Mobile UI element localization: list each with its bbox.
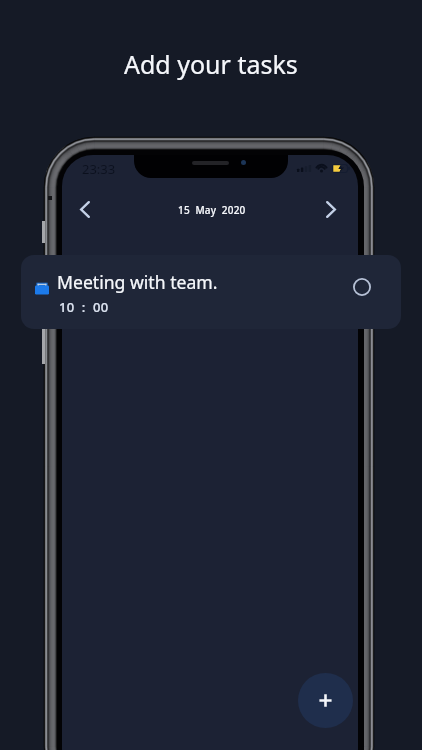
staticText: 23:33 [82,160,116,178]
staticText: Add your tasks [124,47,298,81]
button[interactable]: Next day [314,192,348,226]
button[interactable]: Mark complete [345,270,379,304]
staticText: 15 May 2020 [178,203,246,217]
button[interactable]: Add task [298,673,353,728]
button[interactable]: Previous day [68,192,102,226]
staticText: Meeting with team. [57,270,218,294]
staticText: 10 : 00 [59,298,109,316]
button[interactable]: Meeting with team. [21,255,401,329]
